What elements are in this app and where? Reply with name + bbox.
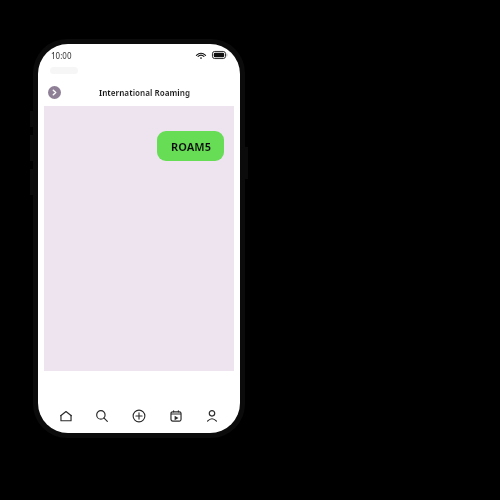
button[interactable]: ROAM5 bbox=[157, 131, 224, 161]
button[interactable]: Profile bbox=[197, 401, 227, 431]
button[interactable]: Back bbox=[48, 86, 61, 99]
staticText: International Roaming bbox=[99, 87, 190, 98]
button[interactable]: Search bbox=[87, 401, 117, 431]
staticText: 10:00 bbox=[51, 50, 72, 61]
staticText: ROAM5 bbox=[171, 139, 211, 154]
button[interactable]: Reels bbox=[161, 401, 191, 431]
button[interactable]: Home bbox=[51, 401, 81, 431]
button[interactable]: Create bbox=[124, 401, 154, 431]
